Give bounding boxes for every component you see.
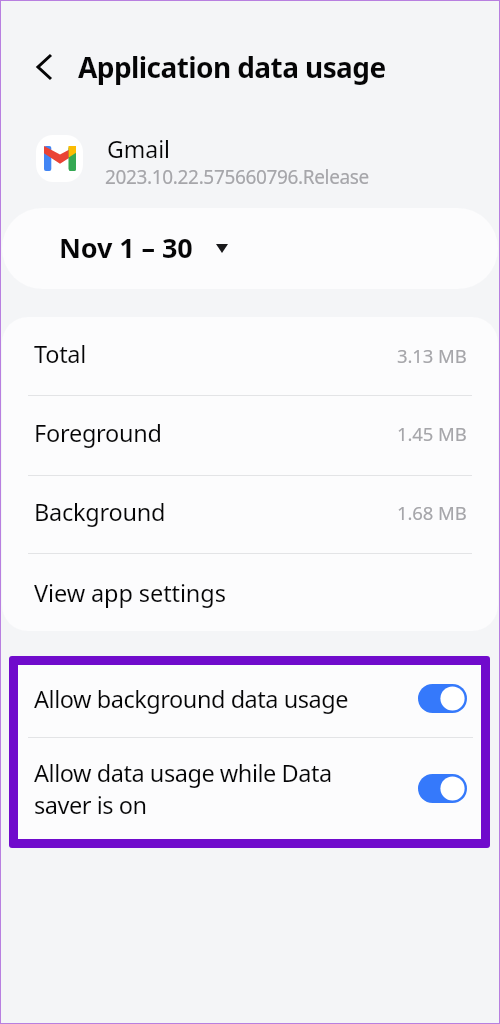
staticText: 1.68 MB [397, 500, 467, 525]
staticText: View app settings [34, 577, 226, 609]
button[interactable]: Toggle [418, 774, 467, 803]
staticText: 3.13 MB [397, 343, 467, 368]
staticText: Background [34, 496, 166, 528]
staticText: Allow data usage while Data saver is on [34, 757, 410, 821]
staticText: Application data usage [78, 48, 386, 86]
button[interactable]: Allow data usage while Data saver is on [9, 738, 490, 839]
button[interactable]: Allow background data usage [9, 665, 490, 737]
staticText: Total [34, 338, 87, 370]
staticText: 1.45 MB [397, 421, 467, 446]
button[interactable]: Toggle [418, 684, 467, 713]
button[interactable]: Foreground [2, 395, 498, 474]
button[interactable]: Background [2, 474, 498, 553]
staticText: Nov 1 – 30 [59, 229, 193, 266]
staticText: Foreground [34, 417, 162, 449]
staticText: Allow background data usage [34, 683, 410, 715]
button[interactable]: Total [2, 317, 498, 395]
button[interactable]: Back [20, 43, 68, 91]
button[interactable]: View app settings [2, 554, 498, 631]
staticText: Gmail [107, 133, 171, 164]
button[interactable]: Nov 1 – 30 [2, 208, 498, 289]
staticText: 2023.10.22.575660796.Release [105, 164, 369, 190]
